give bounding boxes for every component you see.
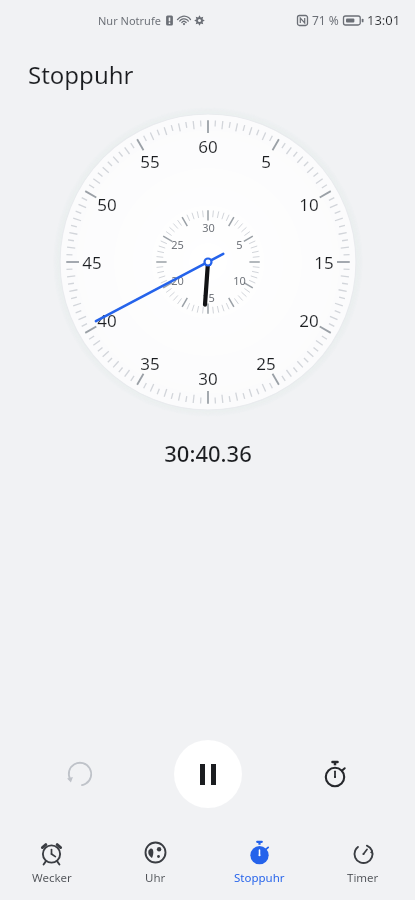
button[interactable]: Pause <box>174 740 242 808</box>
staticText: 30 <box>198 367 218 390</box>
staticText: 50 <box>97 193 117 216</box>
staticText: 10 <box>299 193 319 216</box>
staticText: Nur Notrufe <box>98 13 161 28</box>
staticText: 60 <box>198 135 218 158</box>
button[interactable]: Runde <box>307 746 363 802</box>
button[interactable]: Wecker <box>0 834 103 892</box>
button[interactable]: Timer <box>311 834 415 892</box>
button[interactable]: Stoppuhr <box>207 834 311 892</box>
staticText: Timer <box>347 870 379 886</box>
staticText: 15 <box>314 251 334 274</box>
staticText: 5 <box>261 150 271 173</box>
staticText: 15 <box>202 290 215 305</box>
staticText: 25 <box>256 352 276 375</box>
staticText: 20 <box>171 273 184 288</box>
staticText: 45 <box>82 251 102 274</box>
staticText: 20 <box>299 309 319 332</box>
staticText: 71 % <box>312 12 339 28</box>
staticText: 30 <box>202 220 215 235</box>
staticText: 13:01 <box>367 11 401 29</box>
staticText: 35 <box>140 352 160 375</box>
staticText: Stoppuhr <box>234 870 285 886</box>
staticText: Wecker <box>32 870 72 886</box>
button[interactable]: Zurücksetzen <box>52 746 108 802</box>
staticText: 10 <box>233 273 246 288</box>
button[interactable]: Uhr <box>103 834 207 892</box>
staticText: 25 <box>171 237 184 252</box>
staticText: Uhr <box>145 870 166 886</box>
staticText: Stoppuhr <box>28 58 134 91</box>
staticText: 30:40.36 <box>164 438 252 468</box>
staticText: 40 <box>97 309 117 332</box>
staticText: 55 <box>140 150 160 173</box>
staticText: 5 <box>236 237 243 252</box>
